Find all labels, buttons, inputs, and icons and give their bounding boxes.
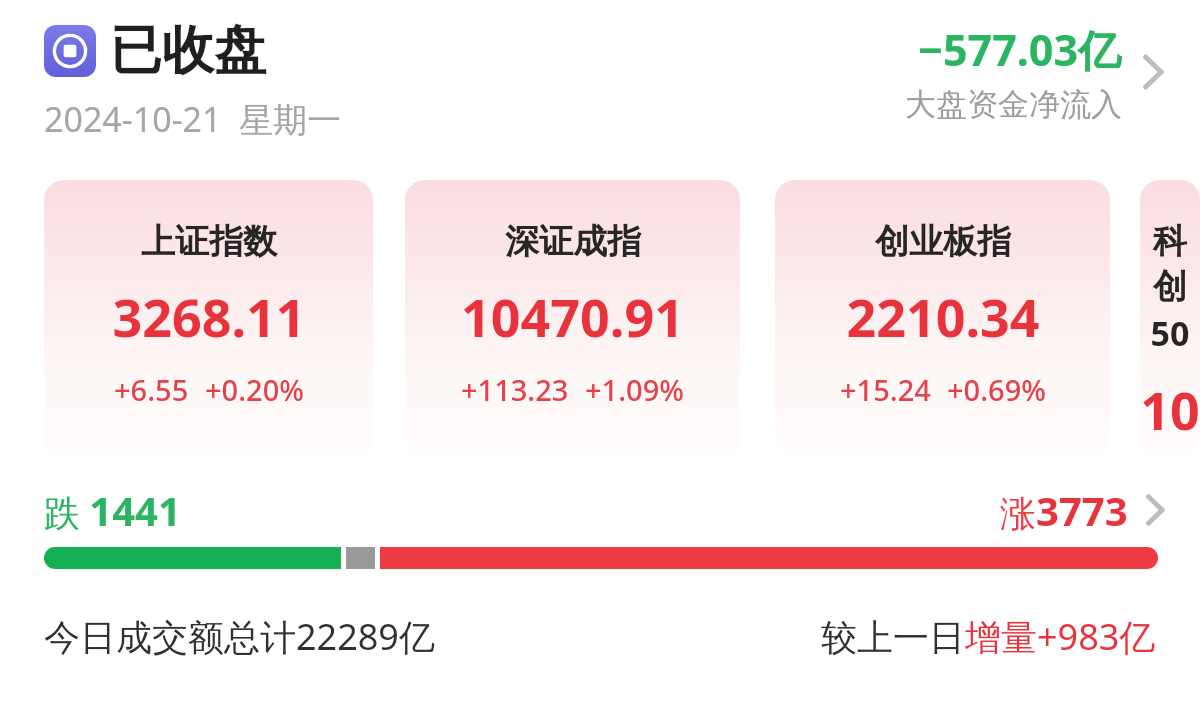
- staticText: 涨3773: [1000, 483, 1128, 537]
- staticText: +0.69%: [947, 370, 1046, 409]
- button[interactable]: 深证成指: [405, 180, 740, 455]
- button[interactable]: 科创50: [1140, 180, 1200, 455]
- staticText: 2210.34: [846, 281, 1040, 352]
- staticText: +113.23: [461, 370, 569, 409]
- staticText: +1.09%: [585, 370, 684, 409]
- staticText: 创业板指: [875, 220, 1011, 263]
- staticText: 深证成指: [505, 220, 641, 263]
- staticText: +15.24: [840, 370, 931, 409]
- other: 大盘资金净流入详情: [1136, 47, 1170, 97]
- button[interactable]: −577.03亿: [905, 20, 1170, 124]
- button[interactable]: 较上一日增量+983亿: [821, 612, 1156, 661]
- staticText: 10470.91: [461, 281, 684, 352]
- button[interactable]: 创业板指: [775, 180, 1110, 455]
- staticText: 2024-10-21 星期一: [44, 96, 342, 142]
- staticText: −577.03亿: [918, 20, 1122, 79]
- staticText: 1068.52: [1140, 374, 1200, 445]
- staticText: 上证指数: [141, 220, 277, 263]
- staticText: +0.20%: [205, 370, 304, 409]
- staticText: 跌 1441: [44, 483, 181, 537]
- button[interactable]: 今日成交额总计22289亿: [44, 612, 435, 661]
- button[interactable]: 上证指数: [44, 180, 373, 455]
- staticText: 3268.11: [112, 281, 306, 352]
- button[interactable]: 已收盘: [44, 18, 266, 84]
- button[interactable]: 跌 1441: [44, 483, 1170, 537]
- other: 涨跌家数详情: [1140, 488, 1170, 532]
- staticText: 科创50: [1140, 220, 1200, 356]
- staticText: 已收盘: [110, 18, 266, 84]
- staticText: 大盘资金净流入: [905, 85, 1122, 124]
- staticText: +6.55: [114, 370, 189, 409]
